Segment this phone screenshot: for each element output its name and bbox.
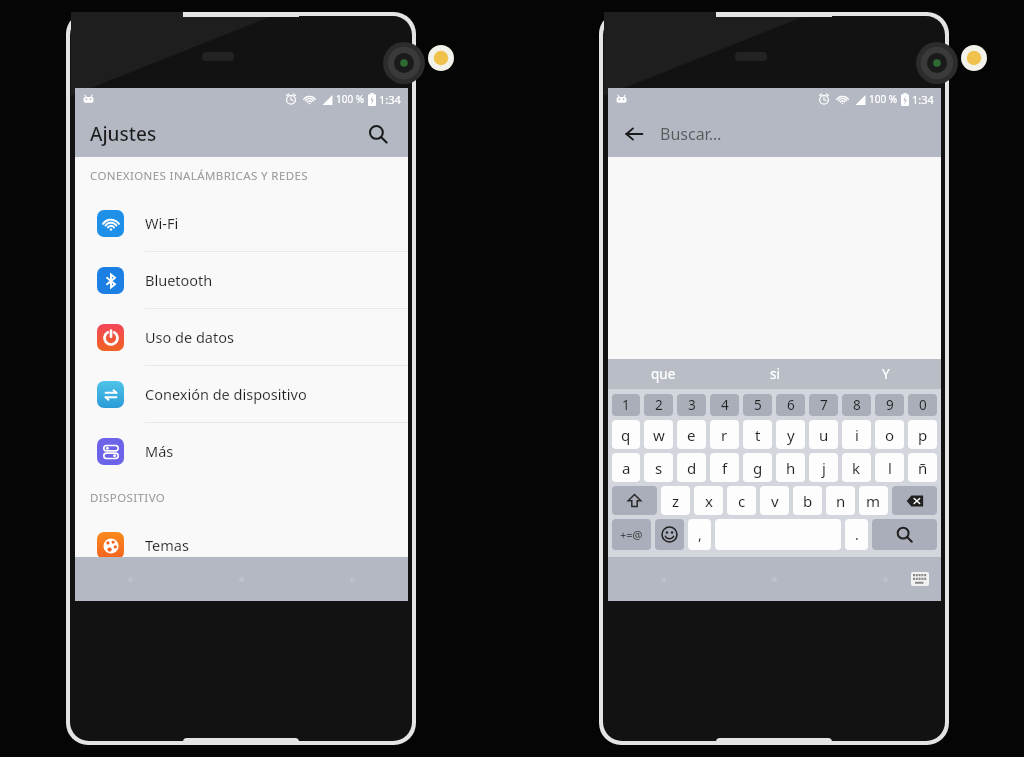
button[interactable]: y <box>776 420 805 449</box>
button[interactable]: Wi-Fi <box>75 195 408 252</box>
staticText: Wi-Fi <box>145 213 179 233</box>
staticText: m <box>866 491 881 511</box>
staticText: w <box>653 425 665 445</box>
button[interactable]: 7 <box>809 394 838 416</box>
staticText: que <box>651 365 676 383</box>
button[interactable]: m <box>859 486 888 515</box>
button[interactable]: f <box>710 453 739 482</box>
button[interactable]: q <box>612 420 640 449</box>
staticText: n <box>836 491 846 511</box>
staticText: e <box>687 425 696 445</box>
staticText: si <box>770 365 780 383</box>
button[interactable]: s <box>644 453 673 482</box>
button[interactable]: Recientes <box>830 557 941 601</box>
button[interactable]: 1 <box>612 394 640 416</box>
staticText: 3 <box>688 396 696 414</box>
button[interactable]: Atrás <box>608 110 660 157</box>
button[interactable]: z <box>661 486 690 515</box>
button[interactable]: l <box>875 453 904 482</box>
staticText: Bluetooth <box>145 270 213 290</box>
button[interactable]: c <box>727 486 756 515</box>
button[interactable]: w <box>644 420 673 449</box>
button[interactable] <box>612 486 657 515</box>
staticText: 0 <box>919 396 927 414</box>
staticText: . <box>855 525 859 544</box>
staticText: CONEXIONES INALÁMBRICAS Y REDES <box>90 168 308 184</box>
button[interactable] <box>655 519 684 550</box>
staticText: l <box>888 458 892 478</box>
staticText: 100 % <box>336 92 365 106</box>
button[interactable]: Buscar <box>362 118 394 150</box>
button[interactable]: si <box>719 359 830 389</box>
button[interactable]: . <box>845 519 868 550</box>
button[interactable]: v <box>760 486 789 515</box>
staticText: Buscar… <box>660 123 722 145</box>
staticText: g <box>753 458 763 478</box>
button[interactable]: 9 <box>875 394 904 416</box>
staticText: 4 <box>721 396 729 414</box>
staticText: +=@ <box>620 527 643 542</box>
button[interactable]: Temas <box>75 517 408 574</box>
staticText: 7 <box>820 396 828 414</box>
button[interactable]: o <box>875 420 904 449</box>
button[interactable]: que <box>608 359 719 389</box>
button[interactable]: , <box>688 519 711 550</box>
button[interactable]: u <box>809 420 838 449</box>
staticText: 9 <box>886 396 894 414</box>
staticText: h <box>786 458 796 478</box>
button[interactable]: e <box>677 420 706 449</box>
staticText: k <box>852 458 861 478</box>
staticText: Temas <box>145 535 189 555</box>
button[interactable]: g <box>743 453 772 482</box>
button[interactable]: t <box>743 420 772 449</box>
staticText: o <box>885 425 895 445</box>
staticText: t <box>755 425 761 445</box>
button[interactable]: j <box>809 453 838 482</box>
staticText: i <box>855 425 859 445</box>
staticText: 1:34 <box>912 92 934 107</box>
staticText: j <box>822 458 826 478</box>
button[interactable]: +=@ <box>612 519 651 550</box>
button[interactable] <box>872 519 937 550</box>
staticText: c <box>738 491 746 511</box>
staticText: x <box>705 491 713 511</box>
button[interactable]: 2 <box>644 394 673 416</box>
staticText: 8 <box>853 396 861 414</box>
button[interactable]: p <box>908 420 937 449</box>
button[interactable]: Bluetooth <box>75 252 408 309</box>
button[interactable]: Conexión de dispositivo <box>75 366 408 423</box>
button[interactable]: k <box>842 453 871 482</box>
button[interactable]: 5 <box>743 394 772 416</box>
staticText: f <box>722 458 728 478</box>
button[interactable]: n <box>826 486 855 515</box>
button[interactable]: Y <box>830 359 941 389</box>
button[interactable]: d <box>677 453 706 482</box>
button[interactable]: Cambiar teclado <box>911 572 929 586</box>
button[interactable]: ñ <box>908 453 937 482</box>
button[interactable]: b <box>793 486 822 515</box>
button[interactable]: x <box>694 486 723 515</box>
button[interactable]: 3 <box>677 394 706 416</box>
staticText: z <box>672 491 680 511</box>
button[interactable]: 0 <box>908 394 937 416</box>
button[interactable]: i <box>842 420 871 449</box>
button[interactable]: r <box>710 420 739 449</box>
staticText: 1:34 <box>379 92 401 107</box>
button[interactable]: h <box>776 453 805 482</box>
button[interactable] <box>892 486 937 515</box>
staticText: Más <box>145 441 174 461</box>
button[interactable]: 8 <box>842 394 871 416</box>
button[interactable]: Uso de datos <box>75 309 408 366</box>
button[interactable]: 6 <box>776 394 805 416</box>
button[interactable]: 4 <box>710 394 739 416</box>
button[interactable]: Más <box>75 423 408 479</box>
staticText: Y <box>882 365 890 383</box>
button[interactable]: a <box>612 453 640 482</box>
